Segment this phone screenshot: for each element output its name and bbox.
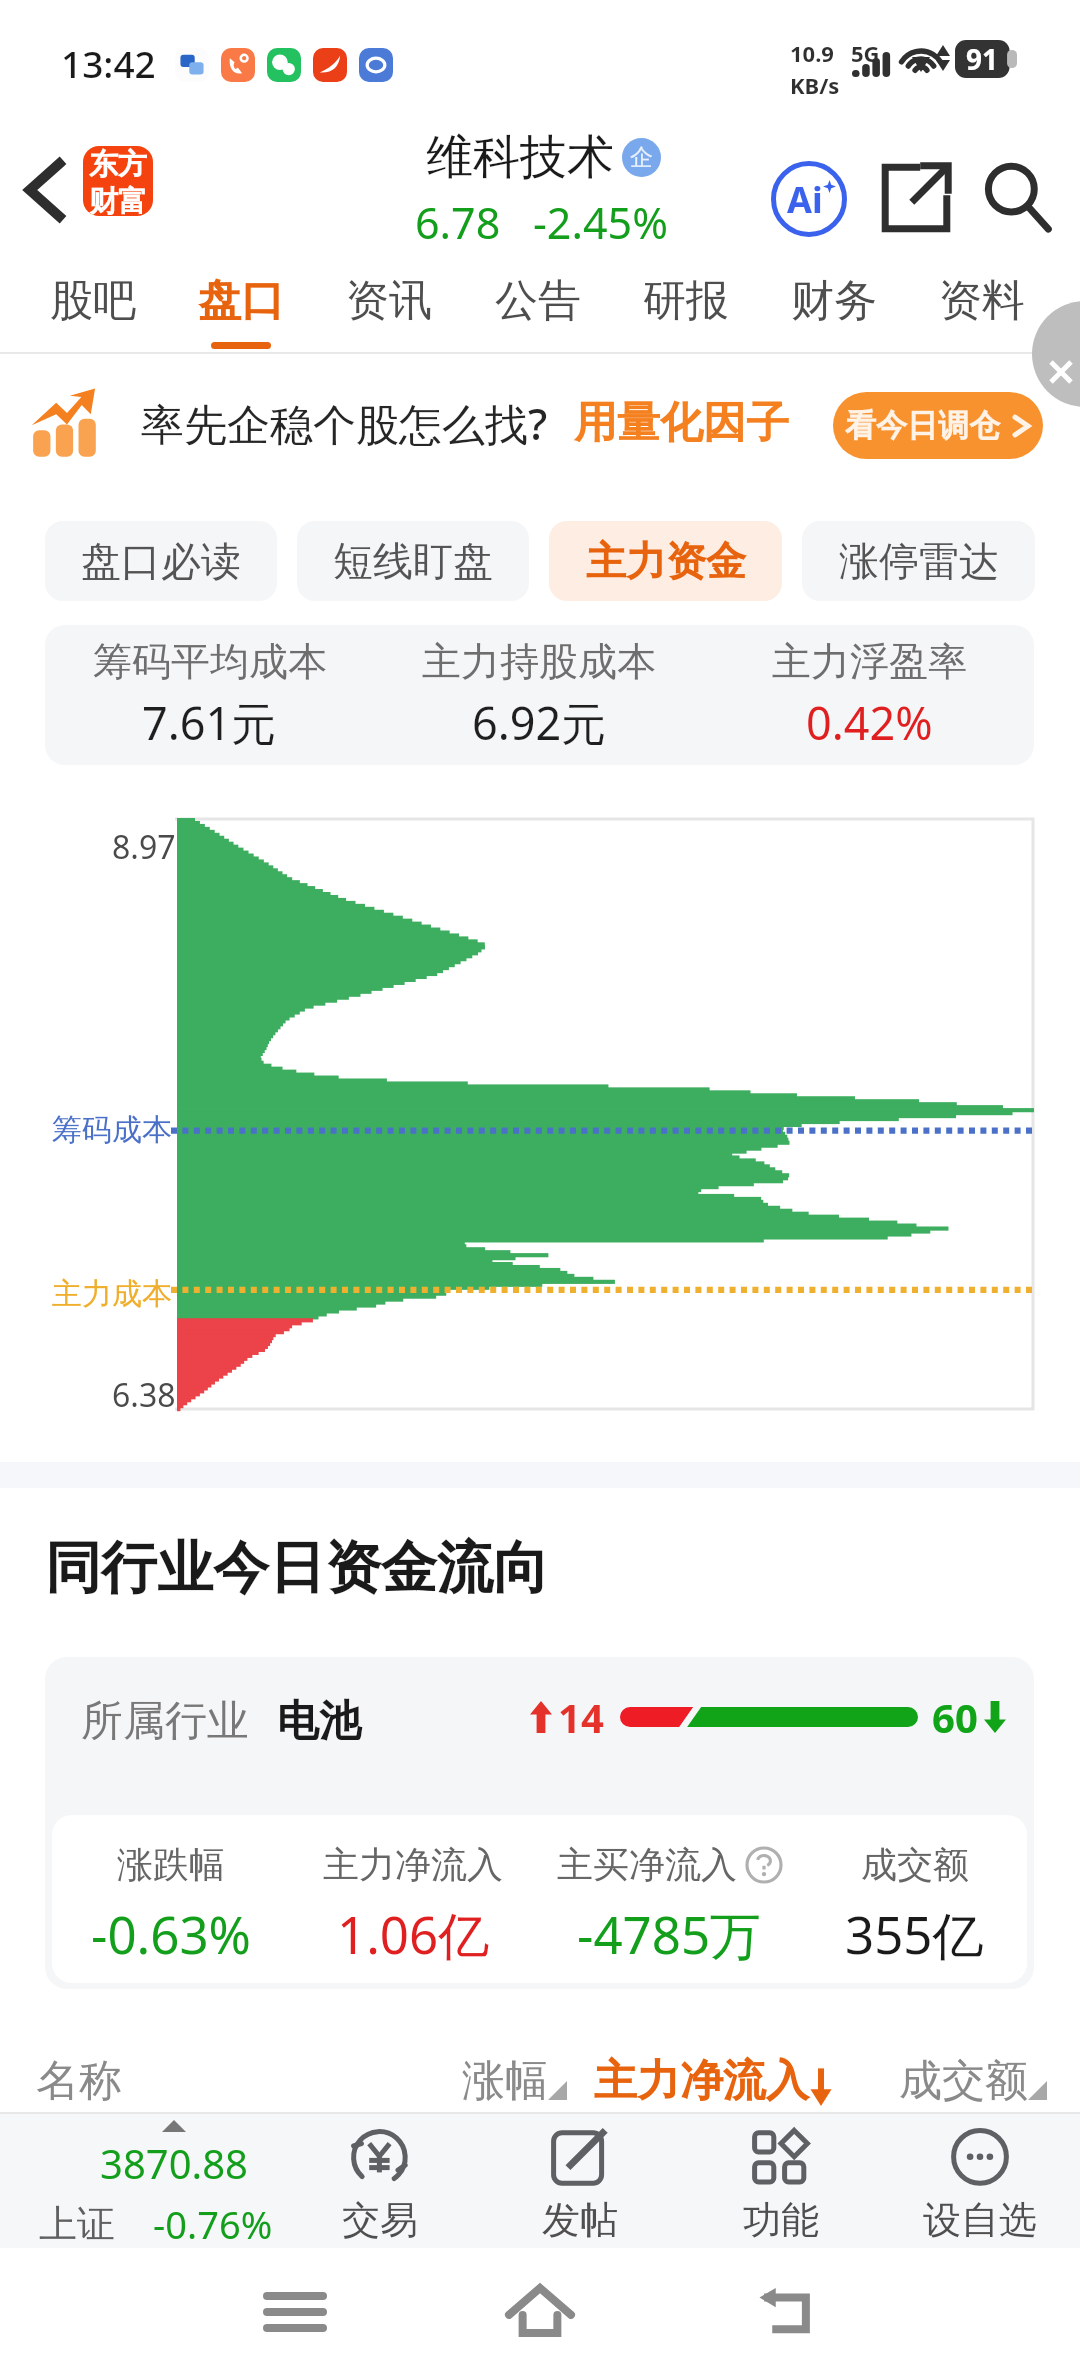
- staticText: -0.76%: [153, 2198, 273, 2250]
- staticText: 同行业今日资金流向: [45, 1533, 549, 1604]
- staticText: 财务: [791, 274, 877, 328]
- staticText: 盘口: [198, 274, 284, 328]
- button[interactable]: 涨停雷达: [802, 521, 1035, 601]
- staticText: 短线盯盘: [333, 536, 493, 586]
- button[interactable]: 研报: [643, 258, 729, 342]
- staticText: 14: [558, 1690, 604, 1744]
- staticText: -4785万: [577, 1899, 762, 1969]
- staticText: 资料: [939, 274, 1025, 328]
- button[interactable]: 盘口: [198, 258, 284, 349]
- staticText: 股吧: [50, 274, 136, 328]
- button[interactable]: Search: [966, 146, 1070, 250]
- staticText: 355亿: [845, 1899, 984, 1969]
- staticText: 研报: [643, 274, 729, 328]
- staticText: 涨跌幅: [117, 1842, 225, 1887]
- staticText: 财富: [89, 183, 147, 216]
- button[interactable]: 看今日调仓: [833, 392, 1043, 459]
- staticText: 1.06亿: [337, 1899, 490, 1969]
- button[interactable]: 主力资金: [549, 521, 782, 601]
- button[interactable]: 发帖: [479, 2122, 680, 2238]
- button[interactable]: 短线盯盘: [297, 521, 529, 601]
- button[interactable]: Recents: [245, 2262, 345, 2362]
- button[interactable]: 公告: [495, 258, 581, 342]
- staticText: 8.97: [112, 825, 176, 869]
- staticText: -2.45%: [533, 193, 668, 252]
- staticText: 电池: [277, 1695, 361, 1748]
- staticText: 率先企稳个股怎么找?: [141, 394, 548, 453]
- button[interactable]: 财务: [791, 258, 877, 342]
- staticText: 看今日调仓: [845, 406, 1000, 445]
- staticText: 功能: [743, 2196, 819, 2244]
- staticText: 筹码平均成本: [93, 637, 327, 686]
- staticText: 上证: [39, 2200, 115, 2248]
- staticText: 涨幅: [462, 2054, 548, 2108]
- staticText: 7.61元: [142, 692, 277, 753]
- staticText: 所属行业: [81, 1695, 249, 1748]
- staticText: 91: [966, 40, 999, 78]
- staticText: 企: [630, 143, 653, 172]
- staticText: -0.63%: [91, 1899, 251, 1968]
- staticText: 主力净流入: [594, 2054, 809, 2108]
- staticText: 3870.88: [100, 2136, 248, 2190]
- staticText: 6.78: [415, 193, 501, 252]
- staticText: 5G: [851, 38, 880, 68]
- staticText: 交易: [342, 2196, 418, 2244]
- button[interactable]: Back: [0, 146, 88, 234]
- button[interactable]: 设自选: [881, 2122, 1079, 2238]
- button[interactable]: 资料: [939, 258, 1025, 342]
- staticText: 主力浮盈率: [772, 637, 967, 686]
- staticText: 0.42%: [806, 692, 933, 753]
- staticText: 10.9: [790, 38, 834, 68]
- staticText: 名称: [36, 2054, 122, 2108]
- button[interactable]: Close ad: [1032, 301, 1080, 407]
- staticText: 6.38: [112, 1373, 176, 1417]
- button[interactable]: East Money home: [83, 146, 153, 216]
- staticText: 筹码成本: [52, 1111, 172, 1149]
- button[interactable]: 3870.88: [36, 2120, 276, 2250]
- staticText: 成交额: [861, 1842, 969, 1887]
- staticText: 13:42: [61, 38, 156, 88]
- staticText: 设自选: [923, 2196, 1037, 2244]
- button[interactable]: 功能: [680, 2122, 881, 2238]
- button[interactable]: 资讯: [346, 258, 432, 342]
- staticText: 主力净流入: [323, 1842, 503, 1887]
- button[interactable]: AI assistant: [756, 146, 862, 252]
- staticText: 维科技术: [426, 128, 614, 187]
- button[interactable]: 交易: [280, 2122, 479, 2238]
- staticText: 发帖: [542, 2196, 618, 2244]
- button[interactable]: 盘口必读: [45, 521, 277, 601]
- staticText: 涨停雷达: [839, 536, 999, 586]
- staticText: 60: [932, 1690, 978, 1744]
- staticText: 主力资金: [586, 536, 746, 586]
- staticText: KB/s: [790, 70, 840, 100]
- staticText: 资讯: [346, 274, 432, 328]
- button[interactable]: Home: [490, 2262, 590, 2362]
- button[interactable]: Share: [864, 146, 968, 250]
- staticText: 主力持股成本: [422, 637, 656, 686]
- button[interactable]: 股吧: [50, 258, 136, 342]
- staticText: 盘口必读: [81, 536, 241, 586]
- staticText: Ai: [787, 175, 823, 224]
- button[interactable]: Back: [735, 2262, 835, 2362]
- staticText: 6.92元: [472, 692, 607, 753]
- staticText: 成交额: [899, 2054, 1028, 2108]
- staticText: 主买净流入: [557, 1842, 737, 1887]
- staticText: 公告: [495, 274, 581, 328]
- staticText: 用量化因子: [574, 396, 789, 450]
- staticText: 东方: [89, 146, 147, 183]
- staticText: 主力成本: [52, 1275, 172, 1313]
